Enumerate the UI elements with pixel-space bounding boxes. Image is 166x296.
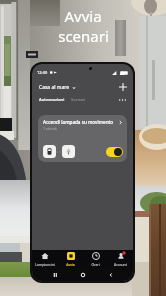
button[interactable]: Home xyxy=(77,269,88,280)
button[interactable]: Toggle automation xyxy=(106,147,123,157)
button[interactable]: Accendi lampada su movimento xyxy=(38,115,127,162)
button[interactable]: Back xyxy=(105,269,116,280)
button[interactable]: Scenari xyxy=(71,97,86,103)
button[interactable]: Add xyxy=(117,81,129,93)
staticText: Casa al mare xyxy=(39,84,70,91)
staticText: Orari xyxy=(91,262,100,267)
button[interactable]: Orari xyxy=(83,250,108,268)
staticText: Lampioncini xyxy=(35,262,55,267)
button[interactable]: Avvia xyxy=(58,250,83,268)
staticText: Automazioni xyxy=(39,97,65,103)
staticText: 1 attività xyxy=(43,126,57,131)
staticText: Accendi lampada su movimento xyxy=(43,119,114,125)
staticText: scenari xyxy=(58,26,109,46)
button[interactable]: More options xyxy=(117,95,127,105)
staticText: Account xyxy=(114,262,127,267)
button[interactable]: Casa al mare xyxy=(39,84,76,91)
button[interactable]: Automazioni xyxy=(39,97,65,103)
button[interactable]: Recents xyxy=(49,269,60,280)
staticText: 12:00 xyxy=(37,70,48,75)
staticText: Avvia xyxy=(66,262,75,267)
button[interactable]: Account xyxy=(108,250,133,268)
button[interactable]: Lampioncini xyxy=(32,250,58,268)
staticText: Avvia xyxy=(64,6,102,26)
staticText: Scenari xyxy=(71,97,86,103)
